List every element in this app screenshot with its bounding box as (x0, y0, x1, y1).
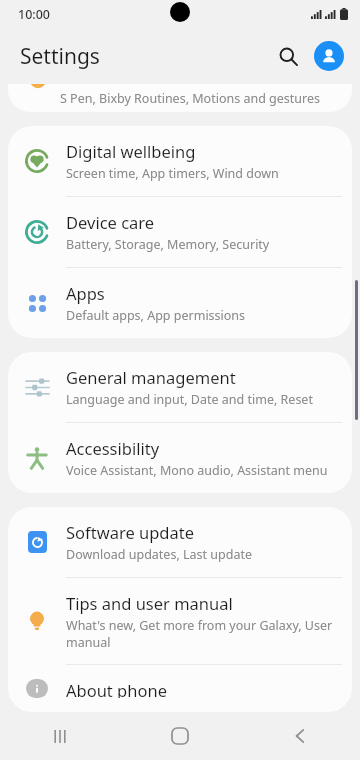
button[interactable]: Apps (8, 268, 352, 338)
button[interactable]: S Pen, Bixby Routines, Motions and gestu… (8, 84, 352, 112)
button[interactable]: Software update (8, 507, 352, 577)
staticText: Digital wellbeing (66, 140, 196, 162)
button[interactable]: About phone (8, 665, 352, 712)
staticText: Device care (66, 211, 155, 233)
button[interactable]: Account (314, 41, 344, 71)
button[interactable]: Accessibility (8, 423, 352, 493)
staticText: 10:00 (18, 6, 51, 23)
button[interactable]: Back (240, 712, 360, 760)
staticText: Default apps, App permissions (66, 307, 246, 324)
staticText: About phone (66, 679, 167, 698)
staticText: General management (66, 366, 236, 388)
button[interactable]: General management (8, 352, 352, 422)
staticText: Download updates, Last update (66, 546, 252, 563)
button[interactable]: Device care (8, 197, 352, 267)
staticText: What's new, Get more from your Galaxy, U… (66, 617, 336, 650)
staticText: Screen time, App timers, Wind down (66, 165, 279, 182)
button[interactable]: Home (120, 712, 240, 760)
button[interactable]: Recents (0, 712, 120, 760)
staticText: Language and input, Date and time, Reset (66, 391, 313, 408)
button[interactable]: Tips and user manual (8, 578, 352, 664)
button[interactable]: Digital wellbeing (8, 126, 352, 196)
staticText: Tips and user manual (66, 592, 233, 614)
staticText: Settings (20, 42, 100, 71)
staticText: Apps (66, 282, 105, 304)
staticText: Software update (66, 521, 194, 543)
staticText: Voice Assistant, Mono audio, Assistant m… (66, 462, 328, 479)
staticText: Accessibility (66, 437, 160, 459)
button[interactable]: Search (270, 38, 306, 74)
staticText: Battery, Storage, Memory, Security (66, 236, 270, 253)
staticText: S Pen, Bixby Routines, Motions and gestu… (60, 90, 320, 107)
